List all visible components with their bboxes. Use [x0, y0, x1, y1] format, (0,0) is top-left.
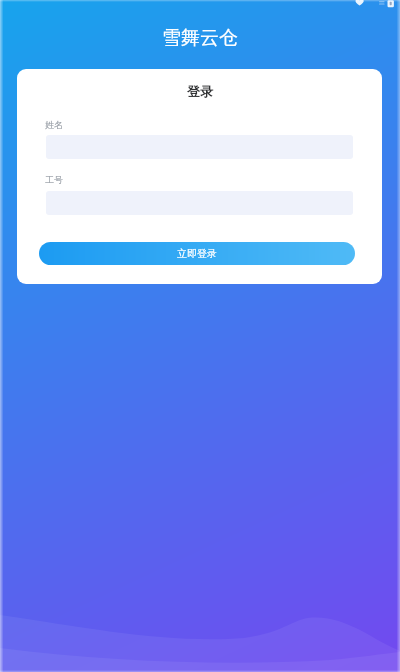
staticText: 姓名: [45, 119, 63, 130]
staticText: 立即登录: [177, 247, 217, 260]
button[interactable]: 立即登录: [39, 242, 355, 265]
other: Status bar icons: [354, 0, 396, 11]
staticText: 登录: [187, 83, 213, 99]
staticText: 雪舞云仓: [162, 26, 238, 50]
staticText: 工号: [45, 174, 63, 185]
